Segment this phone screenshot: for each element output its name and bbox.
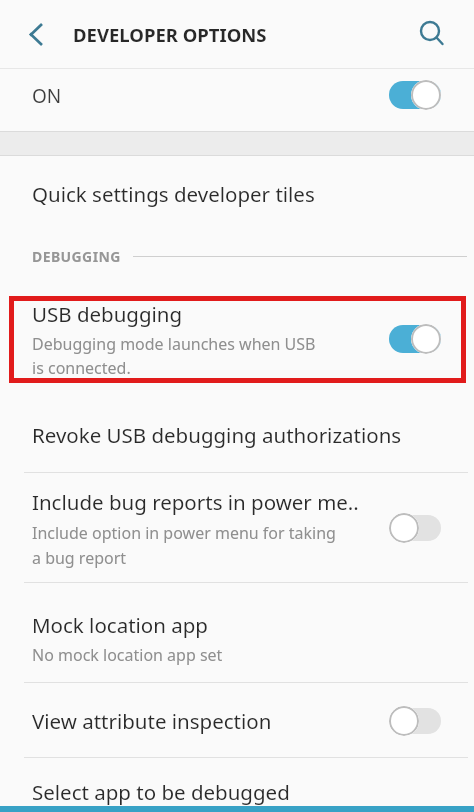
button[interactable]: View attribute inspection: [0, 683, 474, 758]
staticText: Mock location app: [32, 611, 208, 639]
button[interactable]: Quick settings developer tiles: [0, 156, 474, 231]
button[interactable]: [389, 324, 441, 354]
staticText: Revoke USB debugging authorizations: [32, 421, 402, 449]
staticText: Quick settings developer tiles: [32, 180, 315, 208]
staticText: a bug report: [32, 547, 127, 569]
button[interactable]: Revoke USB debugging authorizations: [0, 397, 474, 473]
staticText: Include bug reports in power me..: [32, 488, 359, 516]
button[interactable]: Mock location app: [0, 583, 474, 683]
staticText: ON: [32, 83, 62, 109]
staticText: Include option in power menu for taking: [32, 522, 336, 544]
button[interactable]: USB debugging: [0, 281, 474, 397]
staticText: Debugging mode launches when USB: [32, 333, 316, 355]
staticText: DEVELOPER OPTIONS: [73, 22, 267, 47]
button[interactable]: [389, 513, 441, 543]
button[interactable]: [389, 80, 441, 110]
button[interactable]: ON: [0, 69, 474, 131]
staticText: No mock location app set: [32, 644, 223, 666]
button[interactable]: [412, 14, 452, 54]
button[interactable]: [18, 16, 54, 52]
staticText: DEBUGGING: [32, 247, 121, 266]
staticText: View attribute inspection: [32, 707, 272, 735]
staticText: Select app to be debugged: [32, 778, 290, 806]
button[interactable]: Select app to be debugged: [0, 758, 474, 806]
staticText: USB debugging: [32, 300, 183, 328]
staticText: is connected.: [32, 357, 131, 379]
button[interactable]: [389, 706, 441, 736]
button[interactable]: Include bug reports in power me..: [0, 473, 474, 583]
